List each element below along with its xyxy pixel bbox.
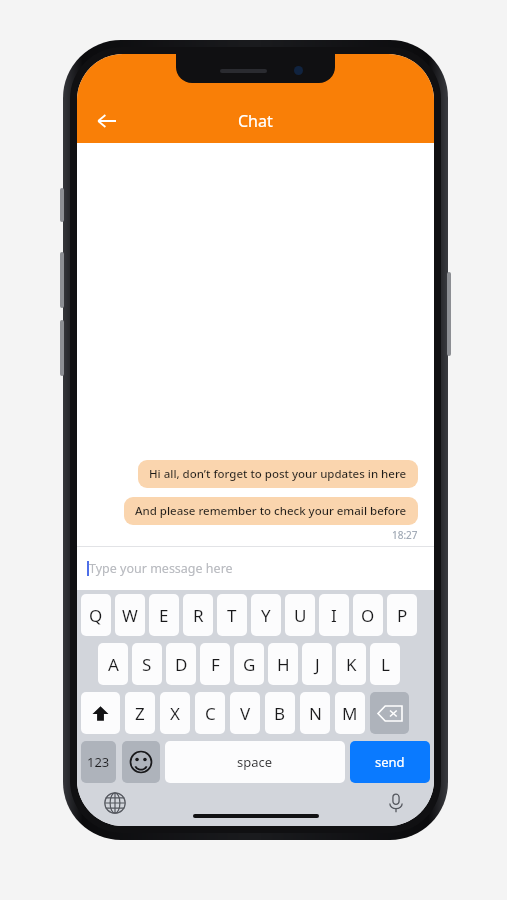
button[interactable]: space (165, 741, 345, 783)
staticText: M (342, 702, 358, 725)
button[interactable]: U (285, 594, 315, 636)
button[interactable]: K (336, 643, 366, 685)
staticText: L (381, 653, 390, 676)
button[interactable]: Emoji (122, 741, 160, 783)
button[interactable]: N (300, 692, 330, 734)
button[interactable]: L (370, 643, 400, 685)
staticText: T (227, 604, 237, 627)
staticText: Z (135, 702, 145, 725)
button[interactable]: R (183, 594, 213, 636)
staticText: Hi all, don’t forget to post your update… (149, 466, 407, 482)
staticText: R (193, 604, 204, 627)
staticText: send (375, 753, 405, 771)
button[interactable]: 123 (81, 741, 116, 783)
button[interactable]: Change keyboard language (97, 785, 133, 821)
staticText: A (108, 653, 119, 676)
staticText: B (274, 702, 286, 725)
button[interactable]: I (319, 594, 349, 636)
staticText: C (205, 702, 216, 725)
button[interactable]: Z (125, 692, 155, 734)
button[interactable]: H (268, 643, 298, 685)
button[interactable]: Hi all, don’t forget to post your update… (138, 460, 418, 488)
staticText: F (211, 653, 220, 676)
staticText: J (315, 653, 320, 676)
staticText: 123 (87, 753, 110, 771)
staticText: V (240, 702, 251, 725)
button[interactable]: Backspace (370, 692, 409, 734)
button[interactable]: Type your message here (77, 547, 434, 590)
staticText: W (122, 604, 138, 627)
button[interactable]: W (115, 594, 145, 636)
staticText: S (142, 653, 152, 676)
button[interactable]: F (200, 643, 230, 685)
button[interactable]: Y (251, 594, 281, 636)
button[interactable]: X (160, 692, 190, 734)
button[interactable]: V (230, 692, 260, 734)
button[interactable]: T (217, 594, 247, 636)
staticText: E (159, 604, 169, 627)
staticText: 18:27 (392, 528, 418, 542)
staticText: G (243, 653, 256, 676)
button[interactable]: Shift (81, 692, 120, 734)
staticText: K (346, 653, 357, 676)
button[interactable]: B (265, 692, 295, 734)
staticText: X (170, 702, 180, 725)
button[interactable]: A (98, 643, 128, 685)
staticText: Q (89, 604, 103, 627)
button[interactable]: C (195, 692, 225, 734)
staticText: D (175, 653, 188, 676)
staticText: U (294, 604, 307, 627)
staticText: space (237, 753, 273, 771)
button[interactable]: E (149, 594, 179, 636)
button[interactable]: M (335, 692, 365, 734)
button[interactable]: O (353, 594, 383, 636)
button[interactable]: Q (81, 594, 111, 636)
button[interactable]: send (350, 741, 430, 783)
button[interactable]: And please remember to check your email … (124, 497, 418, 525)
staticText: P (397, 604, 408, 627)
button[interactable]: D (166, 643, 196, 685)
staticText: Chat (238, 110, 273, 132)
staticText: Y (261, 604, 271, 627)
button[interactable]: P (387, 594, 417, 636)
staticText: H (277, 653, 290, 676)
button[interactable]: Voice input (378, 785, 414, 821)
staticText: And please remember to check your email … (135, 503, 407, 519)
staticText: N (309, 702, 322, 725)
button[interactable]: J (302, 643, 332, 685)
staticText: Type your message here (89, 560, 233, 577)
button[interactable]: S (132, 643, 162, 685)
staticText: O (361, 604, 375, 627)
button[interactable]: G (234, 643, 264, 685)
button[interactable]: Back (85, 99, 129, 143)
staticText: I (331, 604, 337, 627)
